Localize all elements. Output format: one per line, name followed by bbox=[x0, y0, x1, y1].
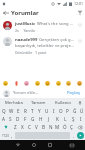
staticText: 12:01 bbox=[74, 1, 83, 6]
button[interactable]: Klavye bbox=[64, 140, 80, 150]
button[interactable]: Emoji bbox=[55, 80, 62, 87]
button[interactable]: Geri bbox=[0, 7, 11, 18]
button[interactable]: Y bbox=[36, 107, 43, 115]
button[interactable]: ?123 bbox=[1, 132, 9, 139]
button[interactable]: Z bbox=[11, 123, 19, 131]
button[interactable]: B bbox=[40, 123, 47, 131]
button[interactable]: F bbox=[21, 115, 29, 123]
button[interactable]: Merhaba bbox=[1, 98, 26, 107]
staticText: W bbox=[9, 108, 14, 114]
button[interactable]: Ü bbox=[78, 107, 85, 115]
staticText: . bbox=[73, 133, 75, 139]
button[interactable]: Emoji bbox=[76, 80, 83, 87]
button[interactable]: Geri bbox=[10, 140, 26, 150]
button[interactable]: S bbox=[7, 115, 14, 123]
button[interactable]: nazude999 bbox=[0, 34, 85, 56]
button[interactable]: R bbox=[22, 107, 29, 115]
staticText: Paylaş bbox=[67, 90, 81, 96]
staticText: Ğ bbox=[73, 108, 77, 114]
staticText: Görüntüle 1 yanıt bbox=[15, 50, 47, 55]
button[interactable]: W bbox=[8, 107, 15, 115]
staticText: L bbox=[64, 116, 67, 122]
staticText: Q bbox=[2, 108, 6, 114]
staticText: M bbox=[55, 124, 60, 130]
staticText: V bbox=[35, 124, 38, 130]
button[interactable]: C bbox=[26, 123, 33, 131]
button[interactable]: N bbox=[47, 123, 54, 131]
button[interactable]: U bbox=[43, 107, 50, 115]
button[interactable]: Emoji bbox=[2, 80, 9, 87]
staticText: justMusic bbox=[15, 21, 36, 27]
button[interactable]: I bbox=[50, 107, 57, 115]
button[interactable]: Beğen bbox=[76, 37, 83, 44]
staticText: Ş bbox=[72, 116, 75, 122]
staticText: J bbox=[48, 116, 50, 122]
staticText: Ö bbox=[63, 124, 67, 130]
staticText: A bbox=[2, 116, 5, 122]
button[interactable]: Son uygulamalar bbox=[42, 140, 58, 150]
button[interactable]: Emoji bbox=[13, 80, 20, 87]
button[interactable]: V bbox=[33, 123, 40, 131]
button[interactable]: Yorum ekle… bbox=[13, 90, 66, 96]
button[interactable]: Sesle yaz bbox=[76, 98, 84, 107]
button[interactable]: Ö bbox=[61, 123, 68, 131]
button[interactable]: I bbox=[77, 115, 85, 123]
button[interactable]: , bbox=[9, 132, 14, 139]
button[interactable]: Gönder bbox=[76, 132, 84, 139]
button[interactable]: Kullanıcı bbox=[51, 98, 76, 107]
button[interactable]: T bbox=[29, 107, 36, 115]
button[interactable]: Beğen bbox=[76, 21, 83, 28]
button[interactable]: E bbox=[15, 107, 22, 115]
staticText: F bbox=[24, 116, 27, 122]
button[interactable]: D bbox=[14, 115, 21, 123]
button[interactable]: O bbox=[57, 107, 64, 115]
button[interactable]: Filtrele bbox=[74, 7, 85, 18]
staticText: Yorumlar bbox=[11, 9, 39, 17]
staticText: Y bbox=[38, 108, 41, 114]
button[interactable]: J bbox=[45, 115, 53, 123]
staticText: T bbox=[31, 108, 34, 114]
staticText: C bbox=[28, 124, 31, 130]
staticText: U bbox=[45, 108, 49, 114]
button[interactable]: Shift bbox=[0, 123, 11, 131]
button[interactable]: L bbox=[61, 115, 69, 123]
staticText: , bbox=[11, 133, 13, 139]
button[interactable]: . bbox=[71, 132, 76, 139]
staticText: Z bbox=[14, 124, 17, 130]
button[interactable]: Ğ bbox=[71, 107, 78, 115]
staticText: N bbox=[49, 124, 53, 130]
staticText: ?123 bbox=[2, 134, 9, 138]
button[interactable]: G bbox=[29, 115, 37, 123]
button[interactable]: K bbox=[53, 115, 61, 123]
button[interactable]: Emoji bbox=[23, 80, 30, 87]
button[interactable]: Sil bbox=[75, 123, 85, 131]
staticText: K bbox=[56, 116, 59, 122]
button[interactable]: M bbox=[54, 123, 61, 131]
button[interactable]: X bbox=[19, 123, 26, 131]
button[interactable]: Ç bbox=[68, 123, 75, 131]
button[interactable]: Emoji bbox=[65, 80, 72, 87]
staticText: Kullanıcı bbox=[55, 100, 72, 106]
staticText: G bbox=[31, 116, 35, 122]
button[interactable]: P bbox=[64, 107, 71, 115]
button[interactable]: H bbox=[37, 115, 45, 123]
staticText: Gerçekten çok güzel olmuş ve çok başarıl… bbox=[39, 37, 75, 43]
button[interactable]: justMusic bbox=[0, 18, 85, 34]
staticText: E bbox=[17, 108, 20, 114]
button[interactable]: Tamam bbox=[26, 98, 51, 107]
staticText: Ç bbox=[70, 124, 73, 130]
button[interactable]: A bbox=[0, 115, 7, 123]
staticText: What's the song name bbox=[37, 21, 75, 27]
staticText: Yorum ekle… bbox=[13, 90, 39, 96]
staticText: R bbox=[24, 108, 27, 114]
staticText: H bbox=[39, 116, 43, 122]
button[interactable]: Emoji bbox=[44, 80, 51, 87]
staticText: O bbox=[59, 108, 63, 114]
button[interactable]: Ş bbox=[69, 115, 77, 123]
button[interactable]: Q bbox=[0, 107, 8, 115]
staticText: I bbox=[53, 108, 55, 114]
button[interactable]: Emoji bbox=[34, 80, 41, 87]
button[interactable]: Paylaş bbox=[66, 89, 82, 97]
button[interactable]: Ana ekran bbox=[26, 140, 42, 150]
